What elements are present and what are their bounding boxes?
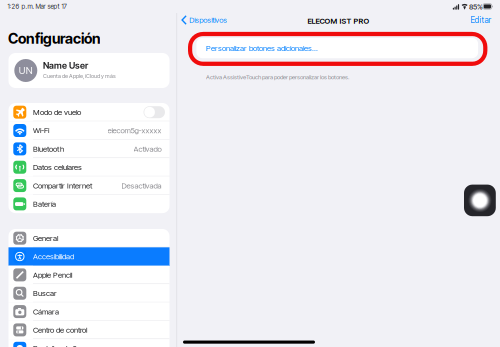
staticText: Mar sept 17 — [35, 2, 66, 10]
button[interactable]: Modo de vuelo — [8, 103, 169, 121]
staticText: Buscar — [33, 288, 57, 298]
staticText: Centro de control — [33, 325, 87, 335]
staticText: Pantalla y brillo — [33, 344, 80, 347]
button[interactable]: Dispositivos — [180, 13, 236, 27]
staticText: Dispositivos — [189, 15, 227, 25]
staticText: Activado — [133, 144, 161, 154]
button[interactable]: Centro de control — [8, 321, 169, 339]
button[interactable]: Batería — [8, 195, 169, 213]
staticText: Bluetooth — [33, 144, 64, 154]
button[interactable]: Apple Pencil — [8, 266, 169, 284]
staticText: Modo de vuelo — [33, 107, 81, 117]
button[interactable]: Cámara — [8, 302, 169, 321]
staticText: ELECOM IST PRO — [307, 16, 369, 26]
staticText: elecom5g-xxxxx — [107, 126, 161, 135]
button[interactable]: Wi-Fi — [8, 121, 169, 140]
staticText: Configuración — [8, 30, 101, 47]
staticText: 85% — [469, 2, 483, 11]
staticText: Apple Pencil — [33, 270, 72, 280]
button[interactable]: AssistiveTouch — [464, 185, 496, 216]
button[interactable]: Personalizar botones adicionales... — [196, 38, 478, 58]
staticText: Wi-Fi — [33, 126, 49, 135]
staticText: Cámara — [33, 307, 59, 316]
button[interactable]: Bluetooth — [8, 140, 169, 158]
staticText: Cuenta de Apple, iCloud y más — [43, 73, 116, 79]
staticText: Personalizar botones adicionales... — [206, 43, 318, 53]
staticText: 1:26 p.m. — [7, 2, 34, 10]
staticText: UN — [19, 65, 33, 76]
button[interactable]: Buscar — [8, 284, 169, 302]
staticText: Accesibilidad — [33, 252, 74, 261]
staticText: Name User — [43, 60, 88, 71]
staticText: Desactivada — [121, 181, 161, 190]
button[interactable]: UN — [8, 53, 169, 88]
button[interactable]: Editar — [458, 13, 492, 27]
staticText: Batería — [33, 199, 56, 209]
button[interactable]: Accesibilidad — [8, 247, 169, 266]
staticText: Editar — [471, 15, 492, 25]
staticText: General — [33, 233, 58, 243]
staticText: Compartir Internet — [33, 181, 92, 190]
button[interactable]: Compartir Internet — [8, 176, 169, 195]
button[interactable]: Pantalla y brillo — [8, 339, 169, 347]
staticText: Activa AssistiveTouch para poder persona… — [206, 73, 349, 81]
staticText: Datos celulares — [33, 162, 82, 172]
button[interactable]: General — [8, 229, 169, 247]
button[interactable]: Datos celulares — [8, 158, 169, 176]
